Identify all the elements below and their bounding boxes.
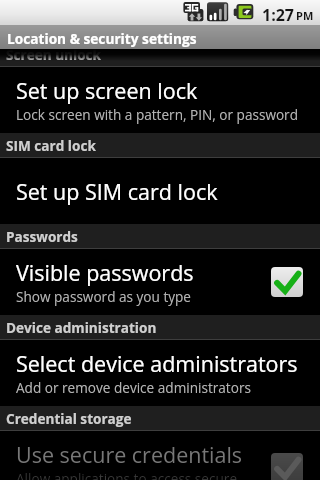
staticText: SIM card lock — [6, 136, 96, 155]
button[interactable]: Select device administrators — [0, 340, 320, 406]
staticText: Location & security settings — [7, 29, 197, 48]
staticText: Set up screen lock — [16, 76, 198, 105]
staticText: Visible passwords — [16, 258, 194, 287]
staticText: Add or remove device administrators — [16, 378, 251, 397]
staticText: 1:27 — [262, 4, 295, 26]
staticText: Select device administrators — [16, 349, 298, 378]
button[interactable]: Set up SIM card lock — [0, 158, 320, 224]
button[interactable]: Visible passwords — [0, 249, 320, 315]
staticText: Passwords — [6, 227, 78, 246]
staticText: Allow applications to access secure — [16, 469, 238, 480]
staticText: Device administration — [6, 318, 157, 337]
button[interactable]: Use secure credentials — [0, 431, 320, 480]
staticText: Set up SIM card lock — [16, 177, 218, 206]
staticText: PM — [296, 8, 314, 23]
staticText: Screen unlock — [6, 45, 102, 64]
staticText: Credential storage — [6, 409, 132, 428]
staticText: Lock screen with a pattern, PIN, or pass… — [16, 105, 298, 124]
button[interactable]: Set up screen lock — [0, 67, 320, 133]
other: Checkbox — [271, 453, 303, 480]
other: Checkbox — [271, 267, 303, 297]
staticText: Use secure credentials — [16, 440, 243, 469]
staticText: Show password as you type — [16, 287, 191, 306]
